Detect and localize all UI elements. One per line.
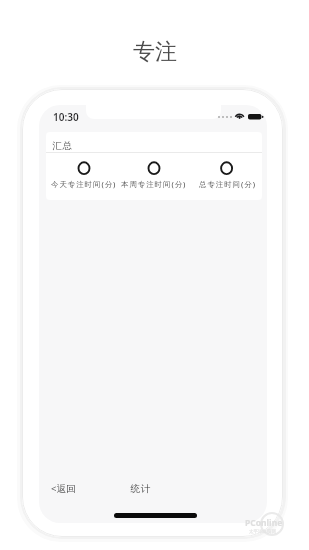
staticText: 10:30 — [53, 110, 79, 123]
staticText: 本周专注时间(分) — [121, 179, 187, 189]
button[interactable]: <返回 — [45, 480, 81, 497]
button[interactable]: 统计 — [123, 480, 158, 497]
staticText: 总专注时间(分) — [199, 179, 256, 189]
staticText: 汇总 — [52, 140, 72, 152]
staticText: 今天专注时间(分) — [51, 179, 117, 189]
staticText: 统计 — [130, 483, 151, 495]
staticText: PConline — [245, 517, 283, 529]
button[interactable] — [46, 132, 262, 200]
staticText: 太平洋电脑网 — [249, 529, 276, 535]
staticText: 专注 — [133, 38, 177, 66]
staticText: <返回 — [51, 482, 76, 495]
